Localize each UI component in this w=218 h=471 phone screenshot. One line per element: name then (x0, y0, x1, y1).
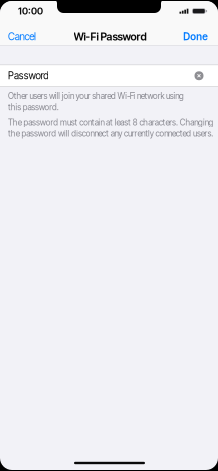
button[interactable]: Done (178, 29, 218, 45)
staticText: Wi-Fi Password (73, 30, 146, 43)
staticText: Other users will join your shared Wi-Fi … (8, 91, 184, 112)
staticText: The password must contain at least 8 cha… (8, 117, 214, 139)
staticText: Cancel (8, 31, 36, 43)
staticText: Password (8, 70, 48, 82)
button[interactable]: Clear text (194, 71, 203, 80)
staticText: Done (183, 31, 208, 43)
button[interactable]: Cancel (0, 29, 41, 45)
button[interactable]: Password (0, 64, 218, 87)
staticText: 10:00 (18, 5, 43, 17)
